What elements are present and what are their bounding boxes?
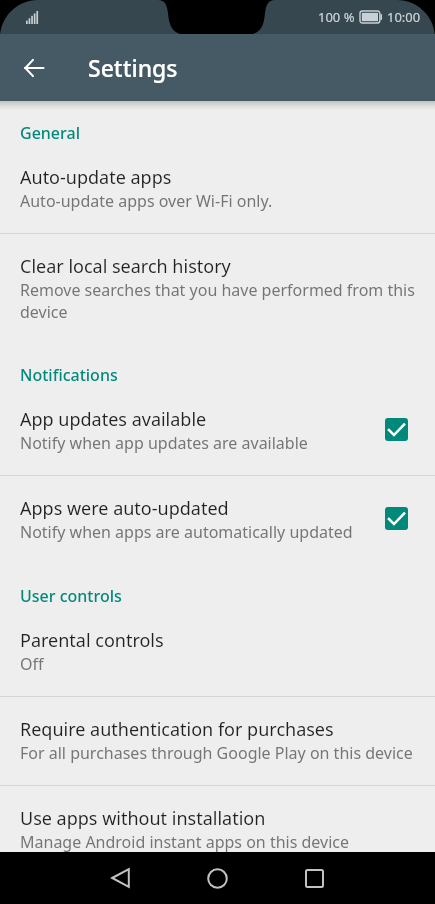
staticText: Clear local search history xyxy=(20,254,231,279)
button[interactable]: Home xyxy=(169,852,266,904)
button[interactable]: Auto-update apps xyxy=(0,144,435,233)
staticText: Manage Android instant apps on this devi… xyxy=(20,831,350,852)
button[interactable]: App updates available xyxy=(0,386,435,475)
button[interactable]: Require authentication for purchases xyxy=(0,697,435,785)
staticText: Notify when apps are automatically updat… xyxy=(20,521,353,543)
staticText: Auto-update apps over Wi-Fi only. xyxy=(20,190,273,212)
button[interactable]: Use apps without installation xyxy=(0,786,435,852)
staticText: General xyxy=(20,122,80,144)
button[interactable]: Apps were auto-updated checkbox xyxy=(385,507,408,530)
button[interactable]: Clear local search history xyxy=(0,234,435,343)
staticText: Auto-update apps xyxy=(20,165,172,190)
staticText: Apps were auto-updated xyxy=(20,496,229,521)
staticText: 10:00 xyxy=(387,8,421,26)
staticText: Settings xyxy=(88,52,178,83)
staticText: For all purchases through Google Play on… xyxy=(20,742,413,764)
button[interactable]: Recents xyxy=(266,852,363,904)
button[interactable]: Parental controls xyxy=(0,607,435,696)
button[interactable]: Back xyxy=(24,59,44,77)
staticText: Require authentication for purchases xyxy=(20,717,334,742)
staticText: User controls xyxy=(20,585,122,607)
staticText: App updates available xyxy=(20,407,207,432)
staticText: 100 % xyxy=(318,8,355,26)
button[interactable]: App updates available checkbox xyxy=(385,418,408,441)
staticText: Use apps without installation xyxy=(20,806,266,831)
button[interactable]: Apps were auto-updated xyxy=(0,476,435,564)
button[interactable]: Back xyxy=(72,852,169,904)
staticText: Notify when app updates are available xyxy=(20,432,308,454)
staticText: Off xyxy=(20,653,44,675)
staticText: Notifications xyxy=(20,364,118,386)
staticText: Parental controls xyxy=(20,628,164,653)
staticText: Remove searches that you have performed … xyxy=(20,279,415,323)
